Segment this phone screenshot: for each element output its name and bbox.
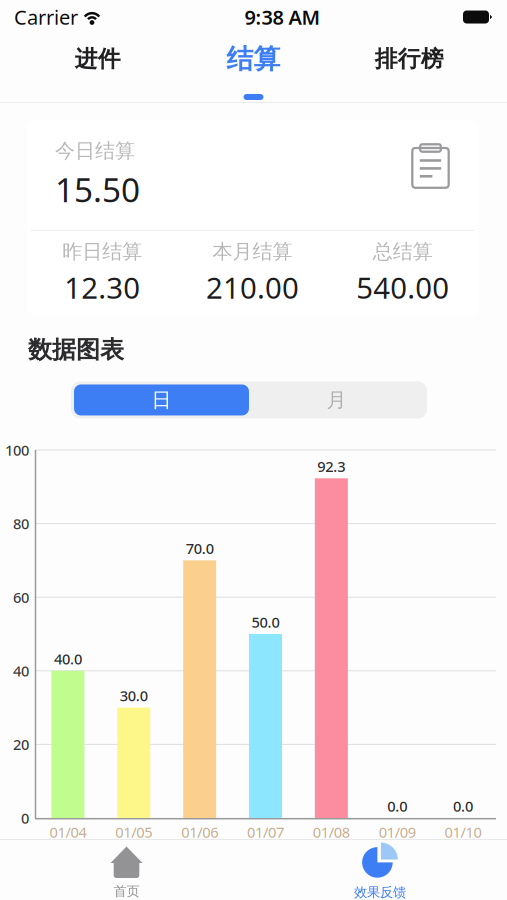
staticText: 总结算	[373, 239, 433, 264]
staticText: 0.0	[387, 796, 407, 816]
staticText: 20	[13, 735, 29, 754]
staticText: 15.50	[55, 167, 140, 211]
staticText: 80	[13, 514, 29, 533]
staticText: 92.3	[317, 457, 345, 476]
staticText: 50.0	[251, 612, 279, 632]
staticText: 0.0	[453, 796, 473, 816]
staticText: 本月结算	[212, 239, 292, 264]
staticText: 9:38 AM	[244, 4, 320, 30]
staticText: 40	[13, 661, 29, 681]
staticText: 60	[13, 587, 29, 607]
button[interactable]: 进件	[20, 34, 176, 102]
staticText: 月	[326, 388, 346, 412]
staticText: 100	[5, 440, 29, 460]
button[interactable]: 排行榜	[331, 34, 487, 102]
staticText: 70.0	[186, 539, 214, 558]
button[interactable]: 日	[74, 384, 249, 415]
staticText: 01/05	[115, 822, 152, 842]
staticText: 12.30	[64, 268, 140, 307]
staticText: 昨日结算	[62, 239, 142, 264]
staticText: 排行榜	[375, 45, 444, 73]
staticText: 210.00	[206, 268, 299, 307]
staticText: 540.00	[356, 268, 449, 307]
button[interactable]: 效果反馈	[253, 840, 507, 900]
button[interactable]: 结算	[176, 34, 331, 102]
staticText: 效果反馈	[354, 884, 406, 900]
staticText: 30.0	[120, 686, 148, 705]
staticText: 今日结算	[55, 139, 135, 163]
staticText: 01/10	[445, 822, 482, 842]
staticText: 0	[21, 808, 29, 828]
staticText: 结算	[226, 43, 280, 75]
staticText: 首页	[113, 883, 139, 899]
staticText: 日	[151, 388, 171, 412]
staticText: Carrier	[14, 4, 78, 30]
staticText: 01/07	[247, 822, 284, 842]
button[interactable]: 月	[249, 384, 424, 415]
staticText: 01/04	[49, 822, 86, 842]
staticText: 数据图表	[28, 335, 124, 364]
staticText: 01/09	[379, 822, 416, 842]
staticText: 40.0	[54, 649, 82, 669]
staticText: 01/08	[313, 822, 350, 842]
button[interactable]: 首页	[0, 840, 253, 900]
staticText: 进件	[75, 45, 121, 73]
staticText: 01/06	[181, 822, 218, 842]
